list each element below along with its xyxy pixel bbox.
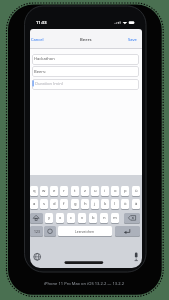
button[interactable] xyxy=(44,226,56,236)
button[interactable]: u xyxy=(91,186,99,196)
button[interactable]: s xyxy=(40,199,48,209)
button[interactable]: Save xyxy=(123,35,137,44)
staticText: 11:33 xyxy=(36,20,47,26)
button[interactable]: g xyxy=(71,199,79,209)
staticText: iPhone 11 Pro Max on iOS 13.2.2 — 13.2.2 xyxy=(44,281,125,287)
staticText: o xyxy=(114,188,117,194)
button[interactable]: ö xyxy=(121,199,129,209)
button[interactable]: b xyxy=(89,213,97,223)
button[interactable]: q xyxy=(30,186,38,196)
button[interactable]: c xyxy=(67,213,75,223)
staticText: ö xyxy=(124,201,127,207)
button[interactable]: k xyxy=(101,199,109,209)
staticText: q xyxy=(33,188,36,194)
staticText: f xyxy=(63,201,65,207)
button[interactable]: ü xyxy=(132,186,140,196)
button[interactable]: f xyxy=(60,199,68,209)
staticText: g xyxy=(74,201,77,207)
staticText: Leerzeichen xyxy=(75,229,95,234)
staticText: s xyxy=(43,201,46,207)
staticText: v xyxy=(81,215,84,221)
staticText: c xyxy=(70,215,73,221)
button[interactable]: r xyxy=(60,186,68,196)
button[interactable] xyxy=(32,54,139,65)
staticText: u xyxy=(94,188,97,194)
staticText: b xyxy=(92,215,95,221)
button[interactable]: o xyxy=(111,186,119,196)
button[interactable] xyxy=(115,226,140,236)
staticText: y xyxy=(48,215,51,221)
staticText: t xyxy=(74,188,76,194)
staticText: w xyxy=(42,188,46,194)
button[interactable]: l xyxy=(111,199,119,209)
button[interactable]: m xyxy=(111,213,119,223)
staticText: n xyxy=(103,215,106,221)
staticText: Beers: xyxy=(34,69,47,75)
button[interactable]: h xyxy=(81,199,89,209)
staticText: e xyxy=(53,188,56,194)
staticText: ü xyxy=(135,188,138,194)
button[interactable]: p xyxy=(121,186,129,196)
button[interactable]: Cancel xyxy=(31,35,46,44)
staticText: k xyxy=(104,201,107,207)
staticText: l xyxy=(114,201,116,207)
button[interactable] xyxy=(32,79,139,90)
button[interactable]: a xyxy=(30,199,38,209)
staticText: i xyxy=(104,188,106,194)
button[interactable]: d xyxy=(50,199,58,209)
button[interactable] xyxy=(124,213,140,223)
staticText: r xyxy=(63,188,65,194)
button[interactable]: Leerzeichen xyxy=(58,226,112,236)
button[interactable]: z xyxy=(81,186,89,196)
staticText: Hackathon xyxy=(34,56,55,62)
button[interactable]: w xyxy=(40,186,48,196)
staticText: p xyxy=(124,188,127,194)
button[interactable] xyxy=(32,66,139,77)
button[interactable]: x xyxy=(56,213,64,223)
button[interactable]: ä xyxy=(132,199,140,209)
staticText: Duration (min) xyxy=(35,81,63,87)
staticText: h xyxy=(84,201,87,207)
staticText: 123 xyxy=(34,229,40,234)
button[interactable]: v xyxy=(78,213,86,223)
button[interactable]: e xyxy=(50,186,58,196)
button[interactable]: i xyxy=(101,186,109,196)
staticText: z xyxy=(84,188,86,194)
staticText: x xyxy=(59,215,62,221)
staticText: j xyxy=(94,201,96,207)
button[interactable]: t xyxy=(71,186,79,196)
button[interactable]: j xyxy=(91,199,99,209)
staticText: a xyxy=(33,201,36,207)
staticText: m xyxy=(113,215,117,221)
button[interactable] xyxy=(30,213,43,223)
button[interactable]: n xyxy=(100,213,108,223)
staticText: Save xyxy=(128,37,137,42)
staticText: d xyxy=(53,201,56,207)
staticText: ä xyxy=(135,201,138,207)
staticText: Beers xyxy=(80,37,92,43)
button[interactable]: 123 xyxy=(30,226,43,236)
staticText: Cancel xyxy=(31,37,44,42)
button[interactable]: y xyxy=(45,213,53,223)
